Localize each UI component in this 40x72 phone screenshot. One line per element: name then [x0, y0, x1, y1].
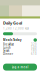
staticText: Lunch: [3, 46, 11, 49]
staticText: 180: [31, 49, 37, 52]
staticText: Log a meal: [11, 65, 28, 69]
button[interactable]: Log a meal: [0, 64, 40, 71]
staticText: Meals Today: [3, 38, 22, 42]
staticText: 320: [31, 43, 37, 46]
staticText: 610: [31, 52, 37, 56]
staticText: 540: [31, 46, 37, 49]
staticText: 1,240 / 2,000 kcal: [3, 27, 29, 30]
button[interactable]: Add meal: [33, 38, 37, 42]
button[interactable]: Breakfast: [0, 43, 40, 46]
button[interactable]: Dinner: [0, 52, 40, 56]
staticText: Breakfast: [3, 43, 14, 46]
button[interactable]: Snack: [0, 49, 40, 52]
staticText: Dinner: [3, 52, 13, 56]
staticText: Snack: [3, 49, 9, 52]
button[interactable]: Lunch: [0, 46, 40, 49]
staticText: Daily Goal: [3, 20, 22, 26]
